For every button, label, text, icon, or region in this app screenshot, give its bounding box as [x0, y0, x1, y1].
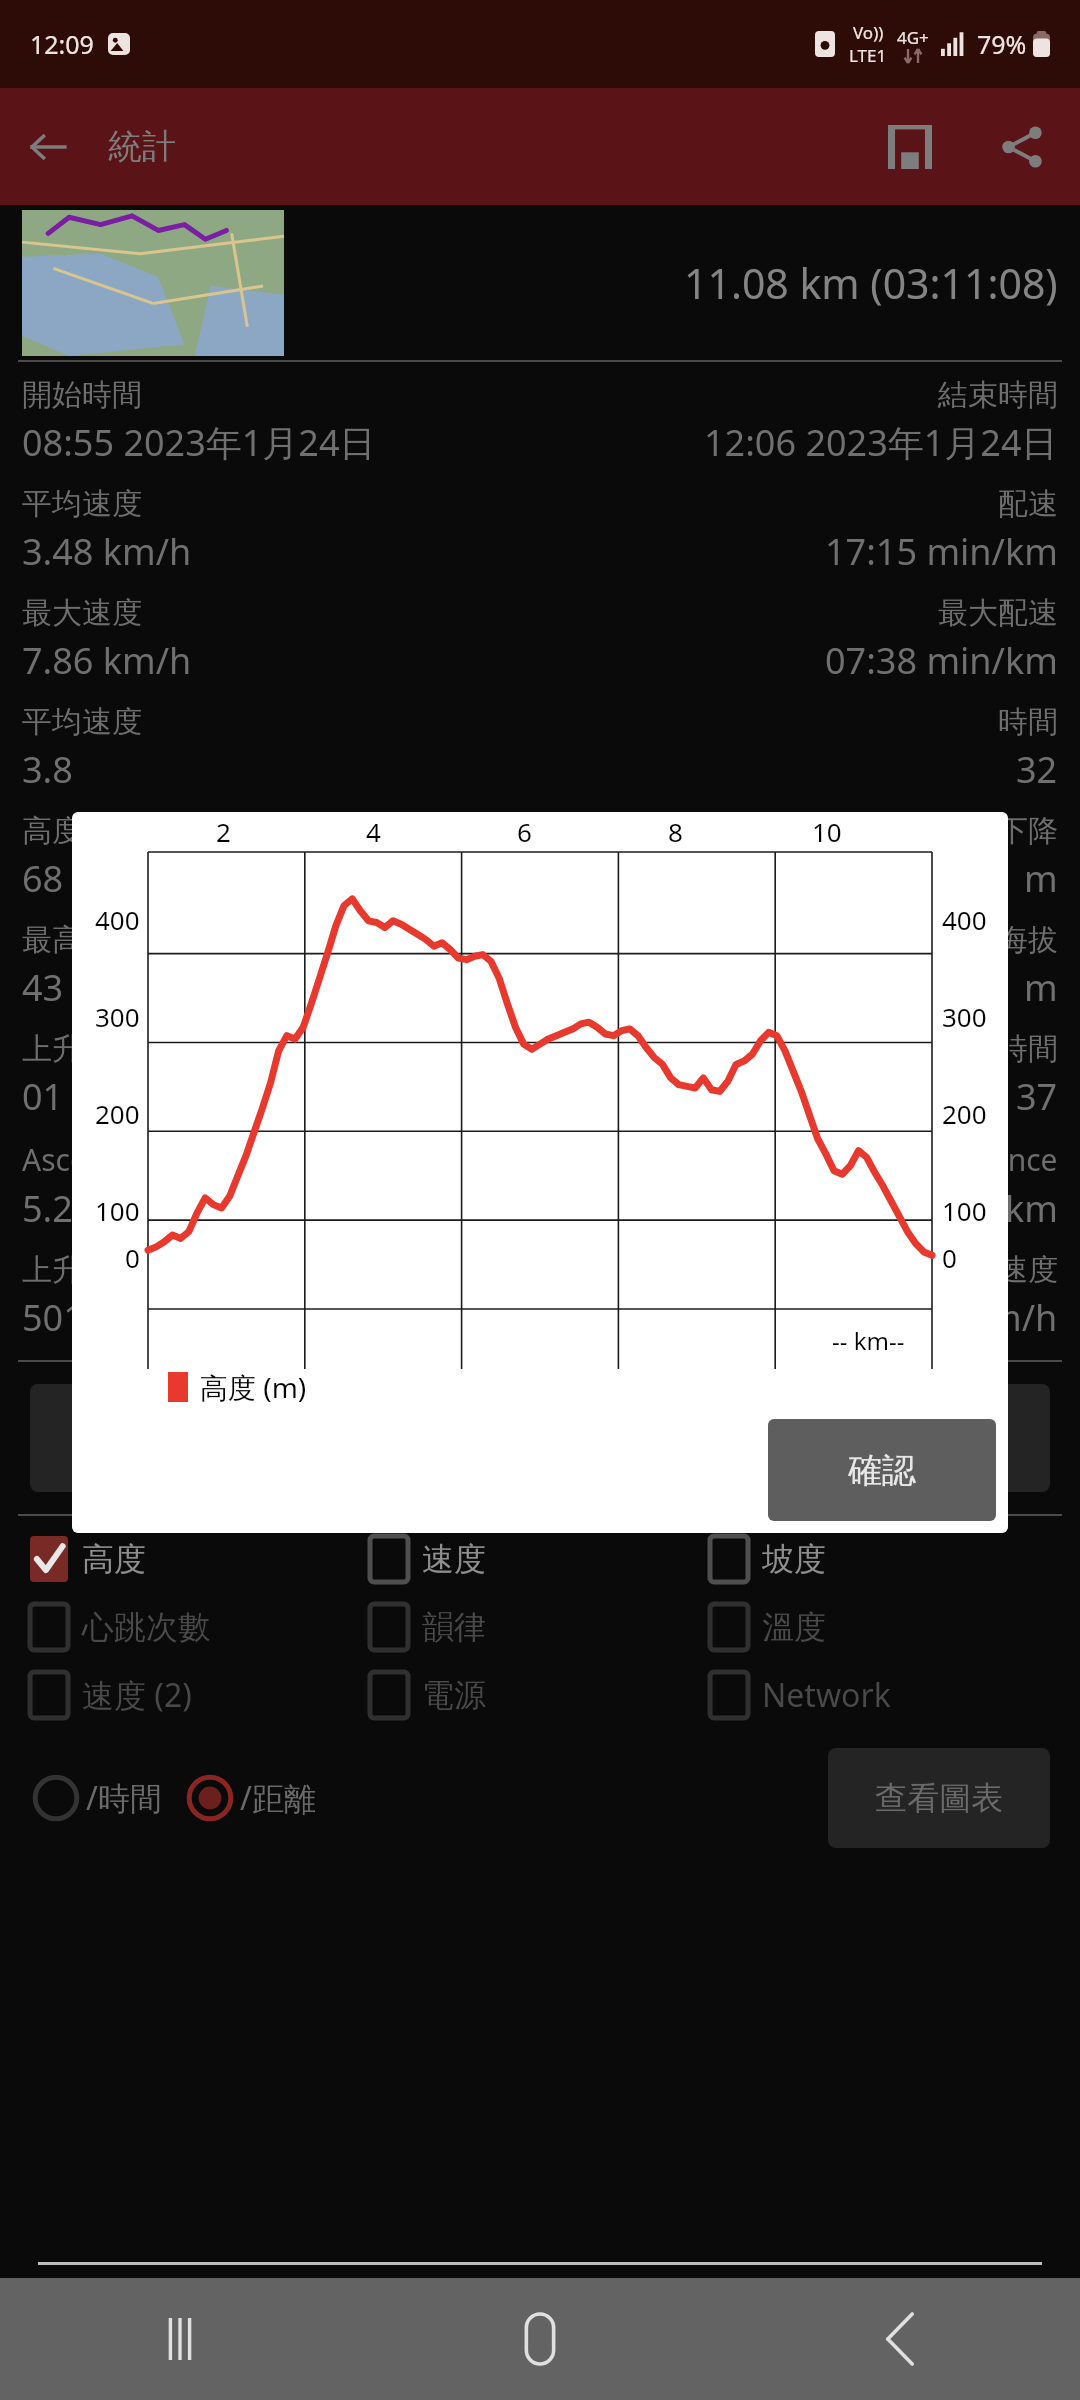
- button[interactable]: Network: [710, 1672, 1050, 1718]
- staticText: 3.48 km/h: [22, 527, 192, 576]
- staticText: 200: [942, 1096, 987, 1131]
- staticText: 4G+: [897, 26, 929, 49]
- staticText: 結束時間: [938, 376, 1058, 414]
- staticText: 300: [942, 999, 987, 1034]
- staticText: 400: [95, 902, 140, 937]
- staticText: 11.08 km (03:11:08): [684, 255, 1058, 311]
- button[interactable]: /時間: [30, 1772, 162, 1824]
- staticText: 2: [216, 814, 231, 849]
- staticText: 最大速度: [22, 594, 142, 632]
- staticText: 韻律: [422, 1607, 486, 1647]
- button[interactable]: Back: [720, 2278, 1080, 2400]
- staticText: Network: [762, 1673, 891, 1717]
- staticText: Vo)): [853, 21, 884, 44]
- staticText: 0: [942, 1240, 957, 1275]
- staticText: Ascent: [22, 1139, 117, 1180]
- staticText: 時間: [998, 703, 1058, 741]
- staticText: 300: [95, 999, 140, 1034]
- staticText: 溫度: [762, 1607, 826, 1647]
- button[interactable]: 坡度: [710, 1536, 1050, 1582]
- staticText: 32: [1016, 745, 1058, 794]
- staticText: 速度 (2): [82, 1673, 192, 1717]
- staticText: 0: [125, 1240, 140, 1275]
- staticText: 453.78 m/h: [866, 1293, 1058, 1342]
- staticText: 100: [942, 1193, 987, 1228]
- staticText: 43: [22, 963, 64, 1012]
- staticText: 下降: [998, 812, 1058, 850]
- button[interactable]: Recent apps: [0, 2278, 360, 2400]
- button[interactable]: Share: [964, 89, 1080, 205]
- staticText: 海拔: [998, 921, 1058, 959]
- staticText: 4: [366, 814, 381, 849]
- button[interactable]: 查看圖表: [828, 1748, 1050, 1848]
- staticText: 開始時間: [22, 376, 142, 414]
- staticText: 7.86 km/h: [22, 636, 192, 685]
- button[interactable]: 速度 (2): [30, 1672, 370, 1718]
- button[interactable]: Home: [360, 2278, 720, 2400]
- staticText: 200: [95, 1096, 140, 1131]
- staticText: m: [1024, 854, 1058, 903]
- staticText: 電源: [422, 1675, 486, 1715]
- staticText: 上升: [22, 1030, 82, 1068]
- staticText: 一圈的距離 (1.00 KM): [71, 1416, 388, 1460]
- staticText: 79%: [977, 27, 1027, 61]
- button[interactable]: 溫度: [710, 1604, 1050, 1650]
- staticText: 6: [517, 814, 532, 849]
- staticText: 12:06 2023年1月24日: [704, 418, 1058, 467]
- staticText: 速度: [422, 1539, 486, 1579]
- staticText: 08:55 2023年1月24日: [22, 418, 376, 467]
- staticText: 下降速度: [938, 1251, 1058, 1289]
- button[interactable]: Back: [0, 99, 96, 195]
- staticText: 37: [1016, 1072, 1058, 1121]
- staticText: 高度: [82, 1539, 146, 1579]
- button[interactable]: 韻律: [370, 1604, 710, 1650]
- staticText: 高度: [22, 812, 82, 850]
- staticText: 時間: [998, 1030, 1058, 1068]
- staticText: 統計: [108, 125, 176, 168]
- staticText: 501.83 m/h: [22, 1293, 214, 1342]
- staticText: 3.8: [22, 745, 73, 794]
- staticText: 400: [942, 902, 987, 937]
- staticText: 01: [22, 1072, 64, 1121]
- button[interactable]: Save: [856, 93, 964, 201]
- staticText: /時間: [86, 1776, 162, 1820]
- staticText: LTE1: [849, 44, 887, 67]
- staticText: 心跳次數: [82, 1607, 210, 1647]
- staticText: km: [1005, 1184, 1058, 1233]
- staticText: 10: [812, 814, 842, 849]
- button[interactable]: 確認: [768, 1419, 996, 1521]
- staticText: -- km--: [832, 1324, 905, 1357]
- button[interactable]: 一圈的距離 (1.00 KM): [30, 1384, 428, 1492]
- staticText: 5.2: [22, 1184, 73, 1233]
- button[interactable]: 詳細: [828, 1384, 1050, 1492]
- staticText: 配速: [998, 485, 1058, 523]
- staticText: 確認: [848, 1449, 916, 1492]
- staticText: 07:38 min/km: [825, 636, 1058, 685]
- staticText: /距離: [240, 1776, 316, 1820]
- staticText: 12:09: [30, 27, 94, 61]
- staticText: Distance: [936, 1139, 1058, 1180]
- staticText: 8: [668, 814, 683, 849]
- button[interactable]: 電源: [370, 1672, 710, 1718]
- staticText: 平均速度: [22, 485, 142, 523]
- staticText: 查看圖表: [875, 1778, 1003, 1818]
- staticText: 高度 (m): [200, 1368, 307, 1406]
- staticText: 坡度: [762, 1539, 826, 1579]
- staticText: 最高: [22, 921, 82, 959]
- staticText: 平均速度: [22, 703, 142, 741]
- staticText: 最大配速: [938, 594, 1058, 632]
- staticText: m: [1024, 963, 1058, 1012]
- staticText: 68: [22, 854, 64, 903]
- staticText: 上升速度: [22, 1251, 142, 1289]
- button[interactable]: 高度: [30, 1536, 370, 1582]
- button[interactable]: /距離: [184, 1772, 316, 1824]
- button[interactable]: 速度: [370, 1536, 710, 1582]
- staticText: 17:15 min/km: [825, 527, 1058, 576]
- button[interactable]: 心跳次數: [30, 1604, 370, 1650]
- staticText: 100: [95, 1193, 140, 1228]
- staticText: 詳細: [907, 1418, 971, 1458]
